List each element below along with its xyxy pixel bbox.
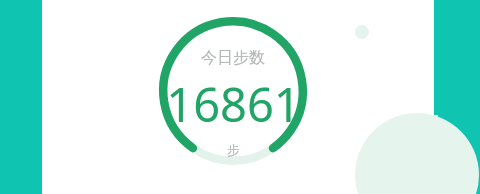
staticText: 步	[227, 142, 240, 158]
staticText: 16861	[166, 72, 301, 136]
button[interactable]: 今日步数 16861 步	[159, 17, 307, 165]
button[interactable]	[42, 0, 438, 194]
staticText: 今日步数	[201, 48, 265, 68]
